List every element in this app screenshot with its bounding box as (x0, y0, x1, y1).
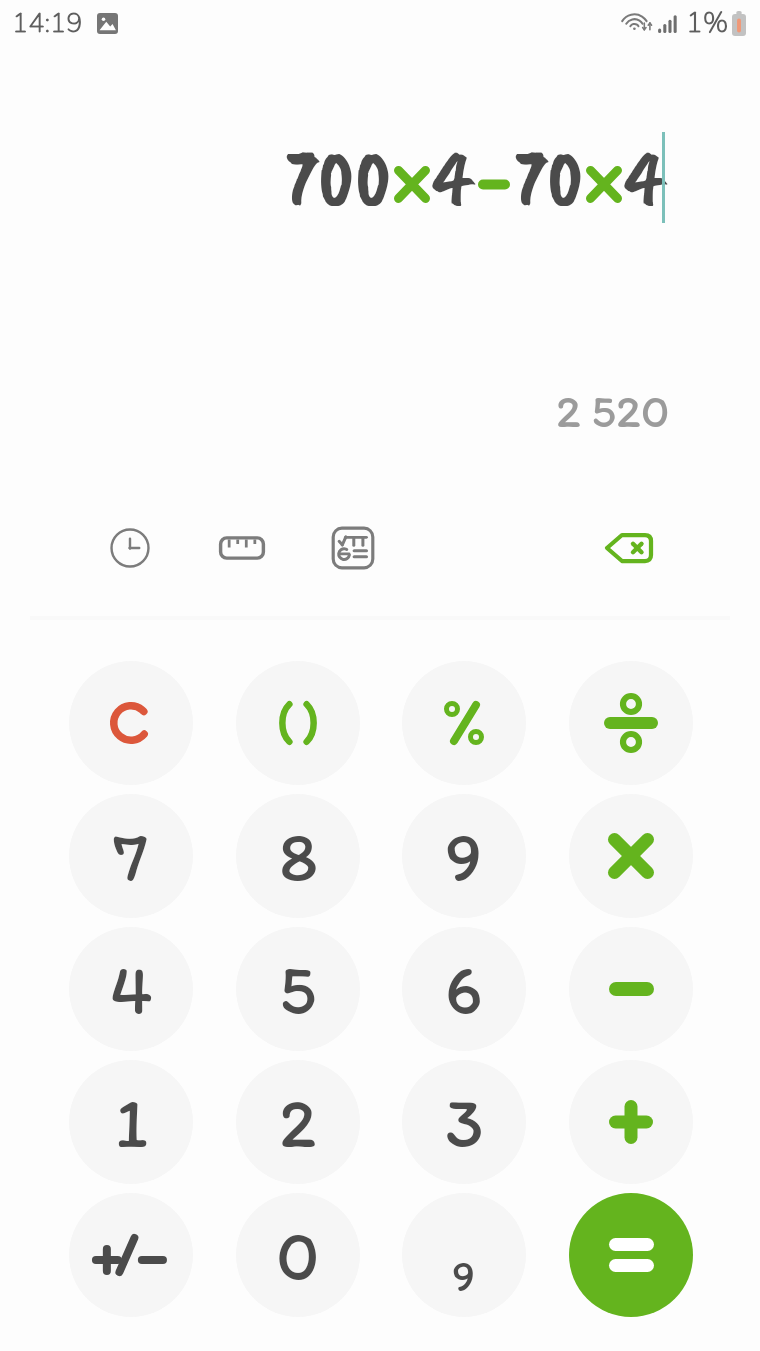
staticText: 6 (445, 947, 483, 1032)
staticText: 9 (452, 1249, 476, 1302)
staticText: 7 (113, 814, 149, 899)
staticText: 3 (445, 1080, 484, 1165)
button[interactable]: 2 (236, 1060, 360, 1184)
staticText: 2 520 (556, 382, 670, 438)
button[interactable]: 6 (402, 927, 526, 1051)
button[interactable]: 7 (69, 794, 193, 918)
button[interactable]: Clear (69, 661, 193, 785)
button[interactable]: Parentheses (236, 661, 360, 785)
staticText: 5 (279, 947, 317, 1032)
button[interactable]: Equals (569, 1193, 693, 1317)
button[interactable]: Unit converter (207, 513, 277, 583)
button[interactable]: 5 (236, 927, 360, 1051)
button[interactable]: 0 (236, 1193, 360, 1317)
button[interactable]: Percent (402, 661, 526, 785)
button[interactable]: 8 (236, 794, 360, 918)
button[interactable]: History (96, 514, 164, 582)
staticText: 9 (445, 814, 483, 899)
button[interactable]: 3 (402, 1060, 526, 1184)
button[interactable]: 4 (69, 927, 193, 1051)
button[interactable]: Backspace (592, 511, 666, 585)
staticText: 0 (276, 1213, 320, 1298)
button[interactable]: Divide (569, 661, 693, 785)
staticText: 4 (626, 127, 664, 229)
staticText: 4 (434, 127, 472, 229)
button[interactable]: Plus (569, 1060, 693, 1184)
button[interactable]: Decimal point (402, 1193, 526, 1317)
staticText: 1% (686, 4, 729, 42)
staticText: 4 (110, 947, 153, 1032)
staticText: 1 (115, 1080, 148, 1165)
staticText: 2 (279, 1080, 317, 1165)
button[interactable]: Multiply (569, 794, 693, 918)
button[interactable]: 9 (402, 794, 526, 918)
staticText: 70 (516, 127, 584, 229)
button[interactable]: 1 (69, 1060, 193, 1184)
button[interactable]: Scientific (319, 514, 387, 582)
staticText: 700 (287, 127, 392, 229)
staticText: 8 (279, 814, 318, 899)
button[interactable]: Change sign (69, 1193, 193, 1317)
button[interactable]: Minus (569, 927, 693, 1051)
staticText: 14:19 (12, 5, 83, 42)
